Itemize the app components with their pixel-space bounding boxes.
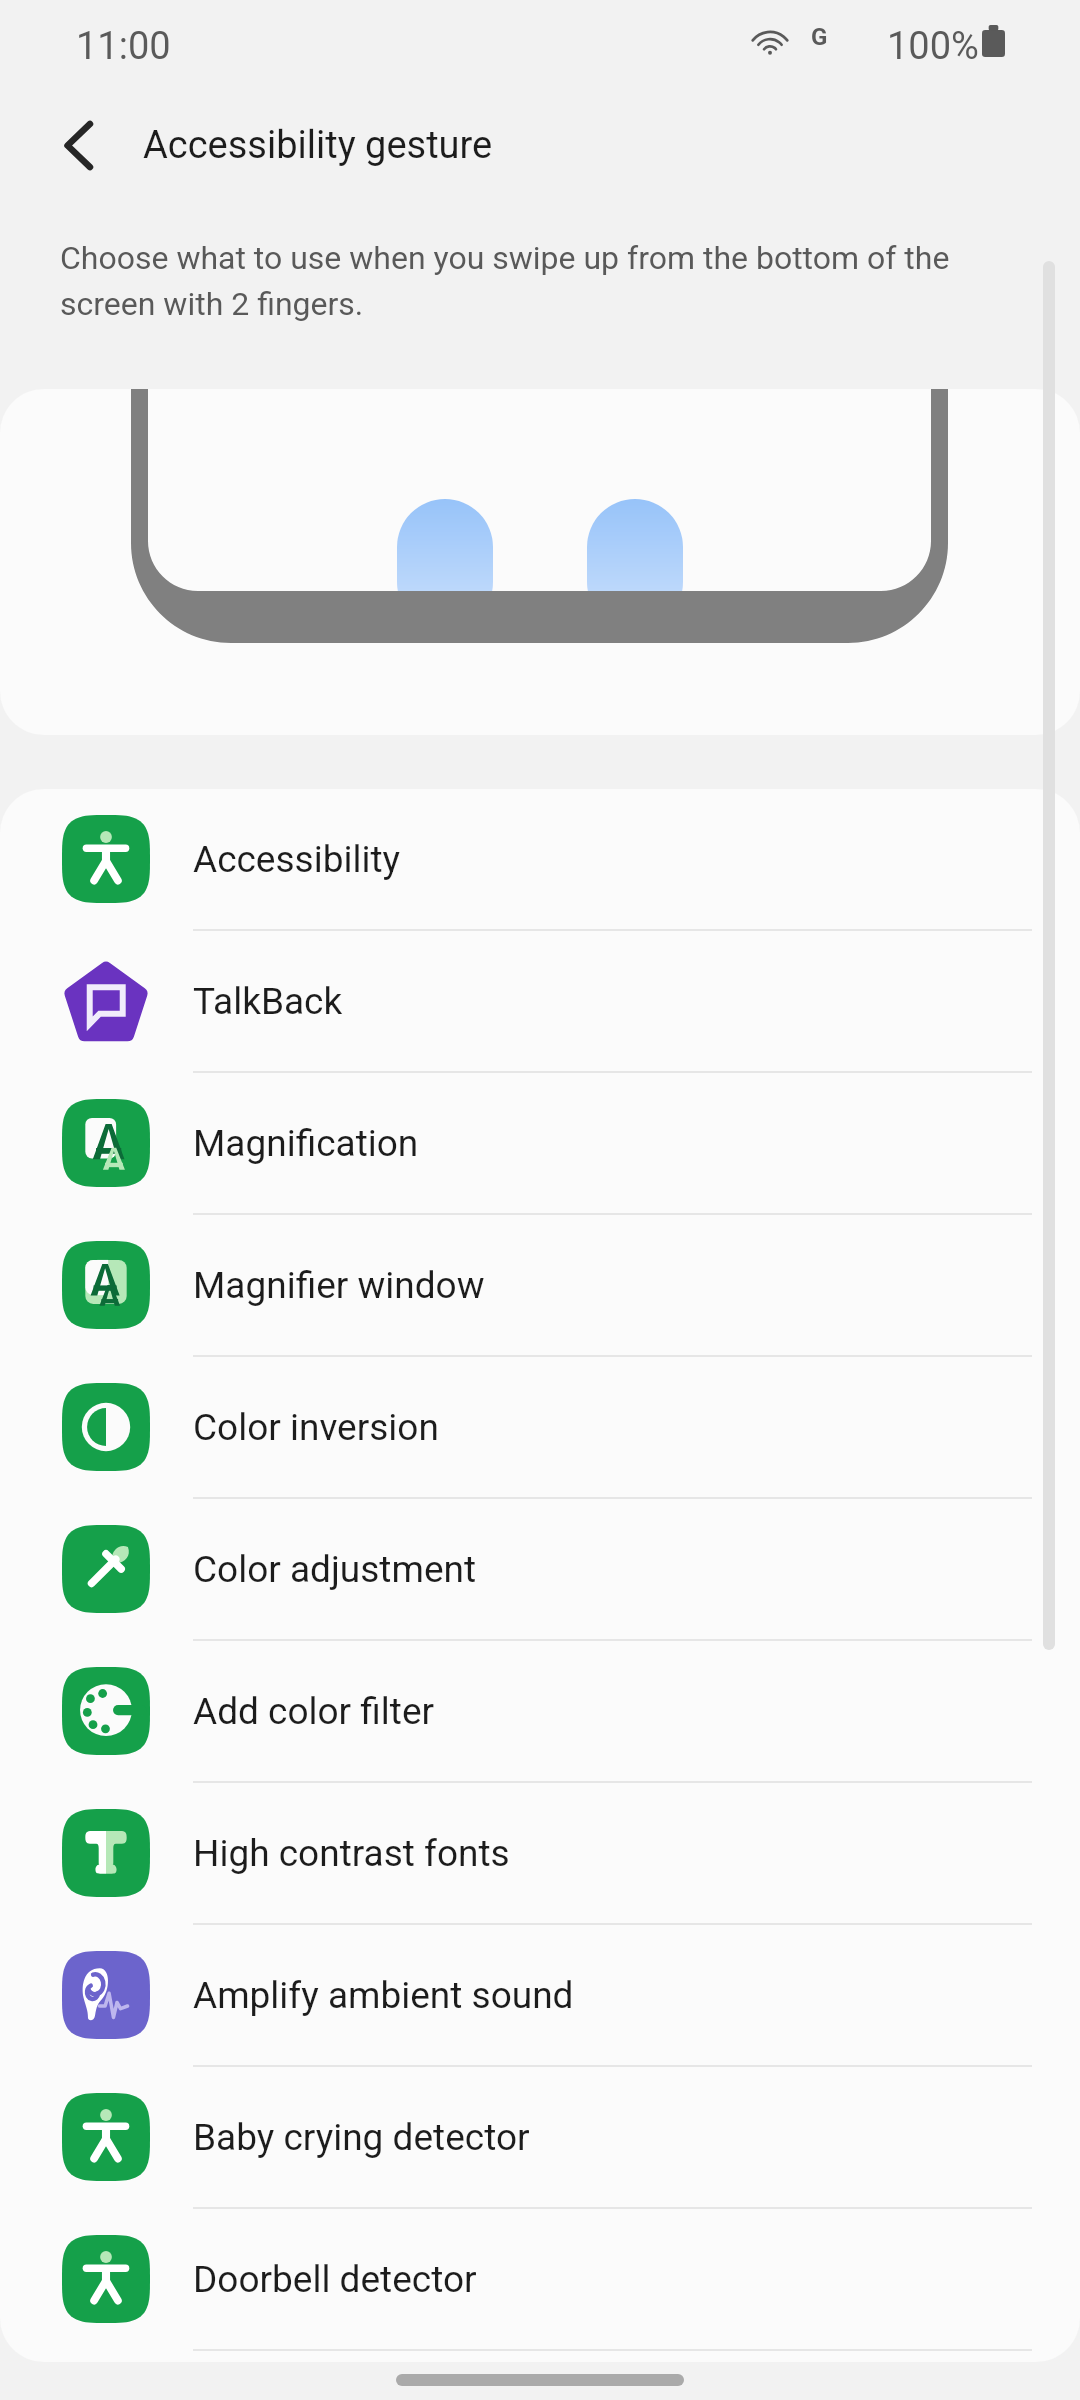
staticText: Accessibility [193,838,401,881]
staticText: Color adjustment [193,1548,477,1591]
button[interactable]: Doorbell detector [0,2209,1080,2349]
staticText: Color inversion [193,1406,439,1449]
button[interactable]: High contrast fonts [0,1783,1080,1923]
button[interactable]: Color adjustment [0,1499,1080,1639]
button[interactable]: Color inversion [0,1357,1080,1497]
button[interactable]: Amplify ambient sound [0,1925,1080,2065]
staticText: Accessibility gesture [143,123,493,168]
staticText: 11:00 [76,24,171,69]
staticText: Add color filter [193,1690,435,1733]
button[interactable]: TalkBack [0,931,1080,1071]
staticText: Magnification [193,1122,419,1165]
staticText: Baby crying detector [193,2116,530,2159]
staticText: High contrast fonts [193,1832,510,1875]
button[interactable]: Add color filter [0,1641,1080,1781]
button[interactable]: Magnifier window [0,1215,1080,1355]
button[interactable]: Baby crying detector [0,2067,1080,2207]
staticText: Choose what to use when you swipe up fro… [60,239,1020,323]
staticText: G [811,23,828,51]
staticText: Magnifier window [193,1264,485,1307]
button[interactable]: Magnification [0,1073,1080,1213]
staticText: Doorbell detector [193,2258,477,2301]
button[interactable]: Accessibility [0,789,1080,929]
staticText: TalkBack [193,980,343,1023]
staticText: Amplify ambient sound [193,1974,574,2017]
staticText: 100% [887,24,979,69]
button[interactable]: Back [0,85,143,205]
